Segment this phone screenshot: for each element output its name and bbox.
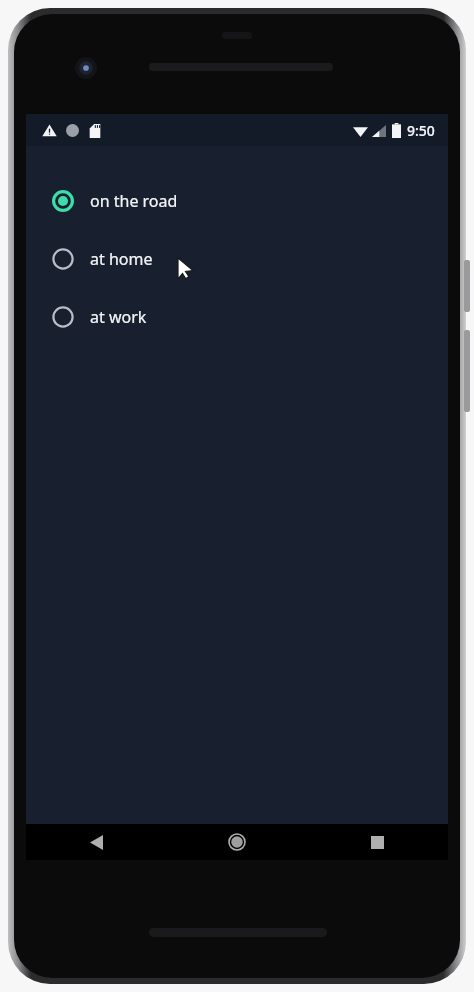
button[interactable]: on the road xyxy=(26,172,448,230)
staticText: on the road xyxy=(90,190,178,212)
staticText: 9:50 xyxy=(407,121,435,140)
button[interactable]: at home xyxy=(26,230,448,288)
button[interactable]: Home xyxy=(166,824,307,860)
button[interactable]: at work xyxy=(26,288,448,346)
button[interactable]: Recent apps xyxy=(307,824,448,860)
staticText: at work xyxy=(90,306,147,328)
staticText: at home xyxy=(90,248,153,270)
button[interactable]: Back xyxy=(26,824,166,860)
